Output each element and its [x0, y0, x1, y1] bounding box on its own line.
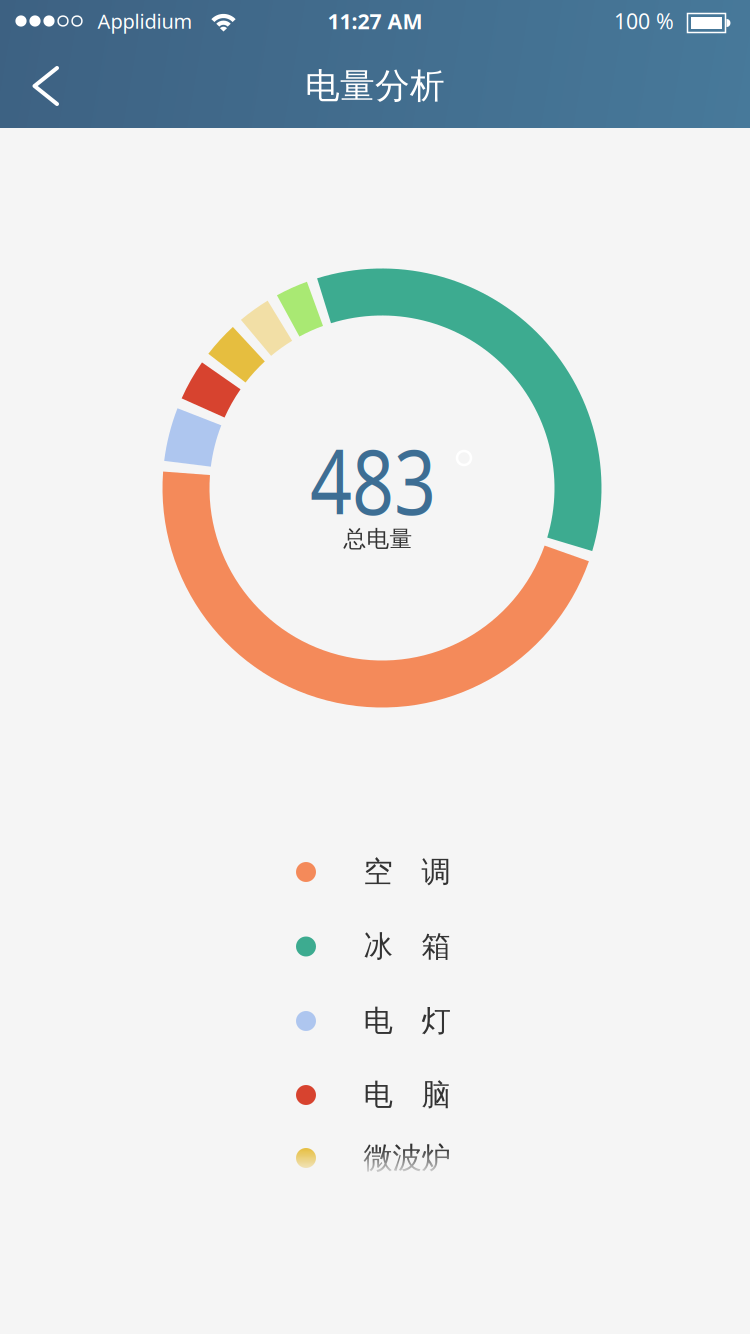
staticText: 空 调 — [363, 854, 450, 890]
staticText: 483 — [296, 421, 449, 539]
staticText: 电 脑 — [363, 1077, 450, 1113]
staticText: Applidium — [97, 8, 192, 34]
staticText: 总电量 — [343, 525, 412, 553]
staticText: 100 % — [614, 7, 674, 35]
staticText: 11:27 AM — [327, 7, 422, 35]
button[interactable]: Back — [0, 40, 88, 128]
staticText: 电 灯 — [363, 1003, 450, 1039]
staticText: 微波炉 — [363, 1140, 450, 1176]
staticText: 电量分析 — [305, 65, 445, 107]
staticText: 冰 箱 — [363, 928, 450, 964]
